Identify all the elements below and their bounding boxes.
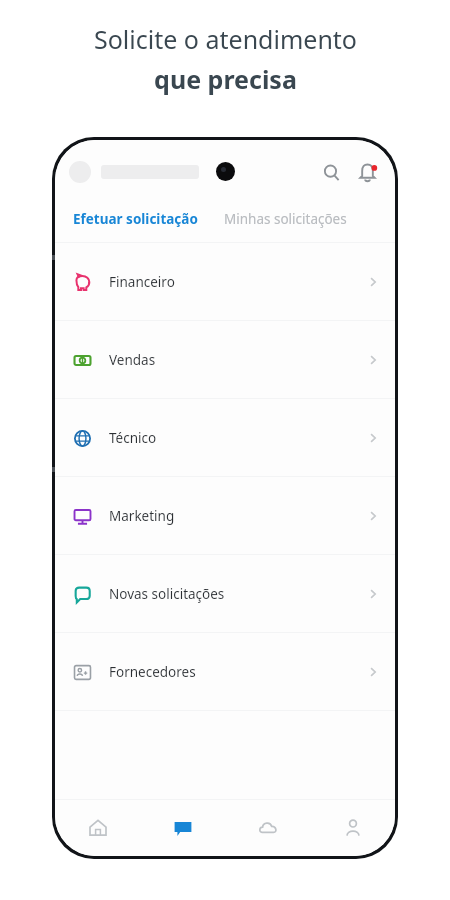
staticText: Minhas solicitações	[224, 210, 347, 228]
button[interactable]: Financeiro	[55, 243, 395, 320]
button[interactable]: Search	[317, 158, 345, 186]
button[interactable]: Messages	[140, 800, 225, 856]
button[interactable]: Minhas solicitações	[222, 202, 349, 236]
button[interactable]: Notifications	[353, 158, 381, 186]
staticText: Técnico	[109, 429, 157, 447]
button[interactable]: Fornecedores	[55, 633, 395, 710]
staticText: Efetuar solicitação	[73, 210, 198, 228]
button[interactable]: Marketing	[55, 477, 395, 554]
button[interactable]: Técnico	[55, 399, 395, 476]
staticText: Marketing	[109, 507, 175, 525]
button[interactable]: Profile avatar	[69, 161, 91, 183]
staticText: Novas solicitações	[109, 585, 225, 603]
button[interactable]: Vendas	[55, 321, 395, 398]
staticText: que precisa	[154, 62, 297, 96]
button[interactable]: Home	[55, 800, 140, 856]
staticText: Financeiro	[109, 273, 175, 291]
staticText: Fornecedores	[109, 663, 196, 681]
button[interactable]: Cloud	[225, 800, 310, 856]
button[interactable]: Efetuar solicitação	[71, 202, 200, 236]
staticText: Vendas	[109, 351, 156, 369]
button[interactable]: Account	[310, 800, 395, 856]
staticText: Solicite o atendimento	[94, 22, 357, 56]
button[interactable]: Novas solicitações	[55, 555, 395, 632]
